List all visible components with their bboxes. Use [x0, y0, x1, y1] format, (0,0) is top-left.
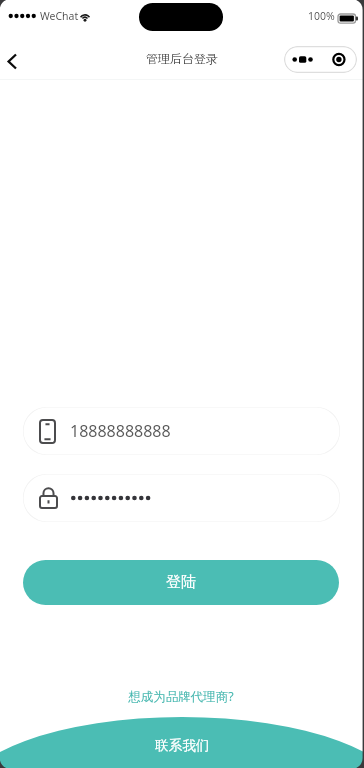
staticText: 管理后台登录 [146, 51, 218, 66]
staticText: 想成为品牌代理商? [128, 688, 234, 705]
button[interactable]: 想成为品牌代理商? [0, 685, 363, 707]
button[interactable]: More options [284, 46, 357, 73]
button[interactable]: 联系我们 [0, 731, 364, 759]
staticText: 18888888888 [70, 420, 171, 442]
staticText: WeChat [40, 9, 79, 23]
staticText: 100% [308, 9, 335, 23]
staticText: 登陆 [166, 573, 196, 592]
button[interactable]: 18888888888 [23, 407, 340, 455]
button[interactable]: 登陆 [23, 560, 339, 605]
staticText: 联系我们 [155, 737, 210, 754]
button[interactable] [23, 474, 340, 522]
button[interactable]: Back [0, 36, 34, 80]
